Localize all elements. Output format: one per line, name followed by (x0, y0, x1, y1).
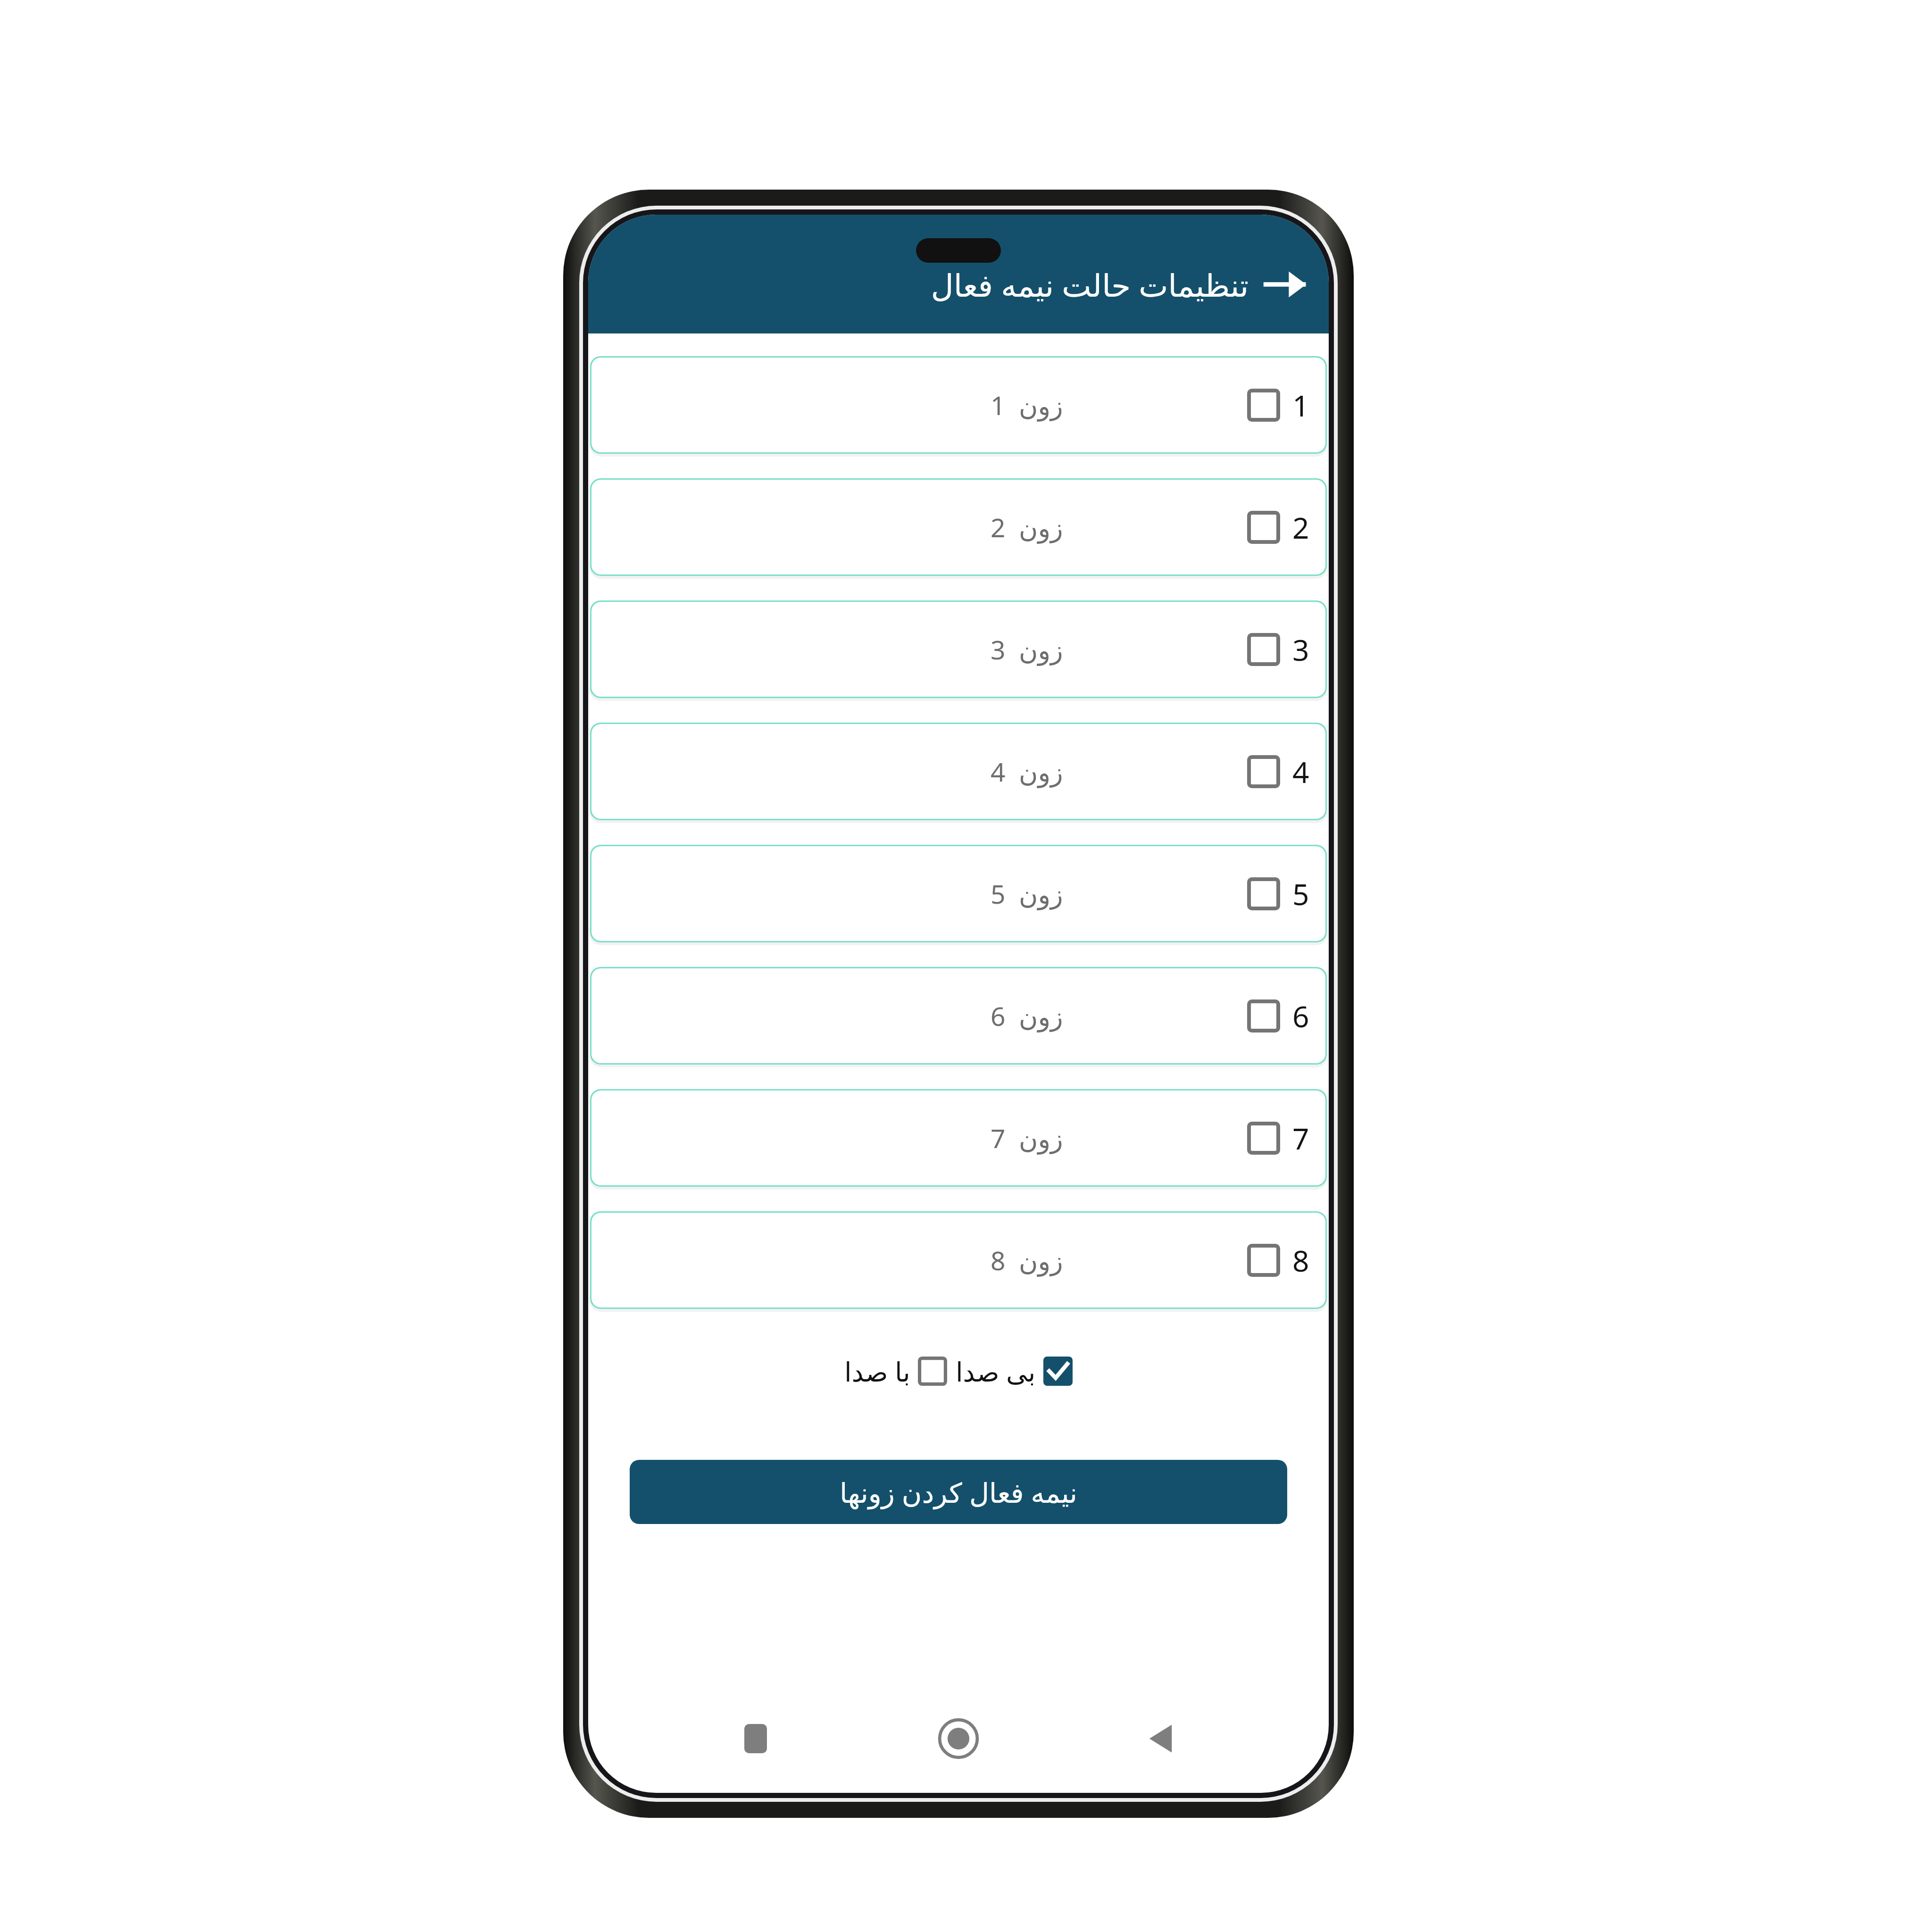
button[interactable]: زون 8 (591, 1213, 1325, 1307)
button[interactable]: زون 6 (591, 968, 1325, 1063)
staticText: زون 5 (991, 876, 1063, 911)
staticText: زون 3 (991, 632, 1063, 667)
button[interactable]: Silent selected (1043, 1357, 1073, 1386)
staticText: 1 (1292, 385, 1309, 425)
button[interactable]: Toggle (1247, 1122, 1280, 1155)
staticText: زون 7 (991, 1120, 1063, 1156)
button[interactable]: نیمه فعال کردن زونها (630, 1460, 1287, 1524)
staticText: تنظیمات حالت نیمه فعال (931, 263, 1249, 306)
staticText: نیمه فعال کردن زونها (840, 1474, 1077, 1511)
button[interactable]: Toggle (1247, 633, 1280, 666)
button[interactable]: با صدا (844, 1353, 910, 1389)
button[interactable]: Toggle (918, 1357, 947, 1386)
staticText: 8 (1292, 1241, 1309, 1280)
staticText: زون 1 (991, 387, 1063, 423)
button[interactable]: Toggle (1247, 511, 1280, 544)
staticText: 4 (1292, 752, 1309, 791)
staticText: 5 (1292, 874, 1309, 914)
button[interactable]: Toggle (1247, 1244, 1280, 1277)
staticText: زون 2 (991, 509, 1063, 545)
staticText: 7 (1292, 1118, 1309, 1158)
button[interactable]: Back (1126, 1703, 1197, 1774)
button[interactable]: Toggle (1247, 877, 1280, 910)
button[interactable]: زون 4 (591, 724, 1325, 819)
staticText: زون 6 (991, 998, 1063, 1033)
staticText: زون 4 (991, 754, 1063, 789)
button[interactable]: Toggle (1247, 999, 1280, 1033)
button[interactable]: بی صدا (956, 1353, 1036, 1389)
button[interactable]: زون 2 (591, 480, 1325, 575)
button[interactable]: Back (1254, 253, 1316, 316)
button[interactable]: زون 1 (591, 358, 1325, 452)
button[interactable]: Recents (720, 1703, 791, 1774)
button[interactable]: زون 7 (591, 1091, 1325, 1185)
staticText: 6 (1292, 996, 1309, 1036)
button[interactable]: Toggle (1247, 755, 1280, 788)
button[interactable]: زون 5 (591, 846, 1325, 941)
button[interactable]: Home (923, 1703, 994, 1774)
staticText: زون 8 (991, 1242, 1063, 1278)
staticText: 3 (1292, 630, 1309, 669)
button[interactable]: Toggle (1247, 389, 1280, 422)
button[interactable]: زون 3 (591, 602, 1325, 697)
staticText: 2 (1292, 508, 1309, 547)
